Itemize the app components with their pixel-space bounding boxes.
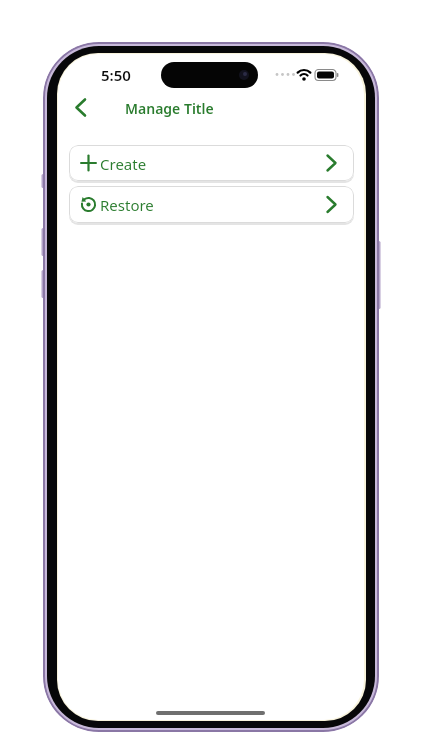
staticText: 5:50 — [101, 65, 131, 85]
button[interactable]: Restore — [69, 186, 354, 223]
staticText: Manage Title — [125, 99, 214, 118]
staticText: Create — [100, 154, 147, 174]
button[interactable]: Create — [69, 145, 354, 181]
staticText: Restore — [100, 195, 154, 215]
button[interactable] — [66, 92, 96, 122]
